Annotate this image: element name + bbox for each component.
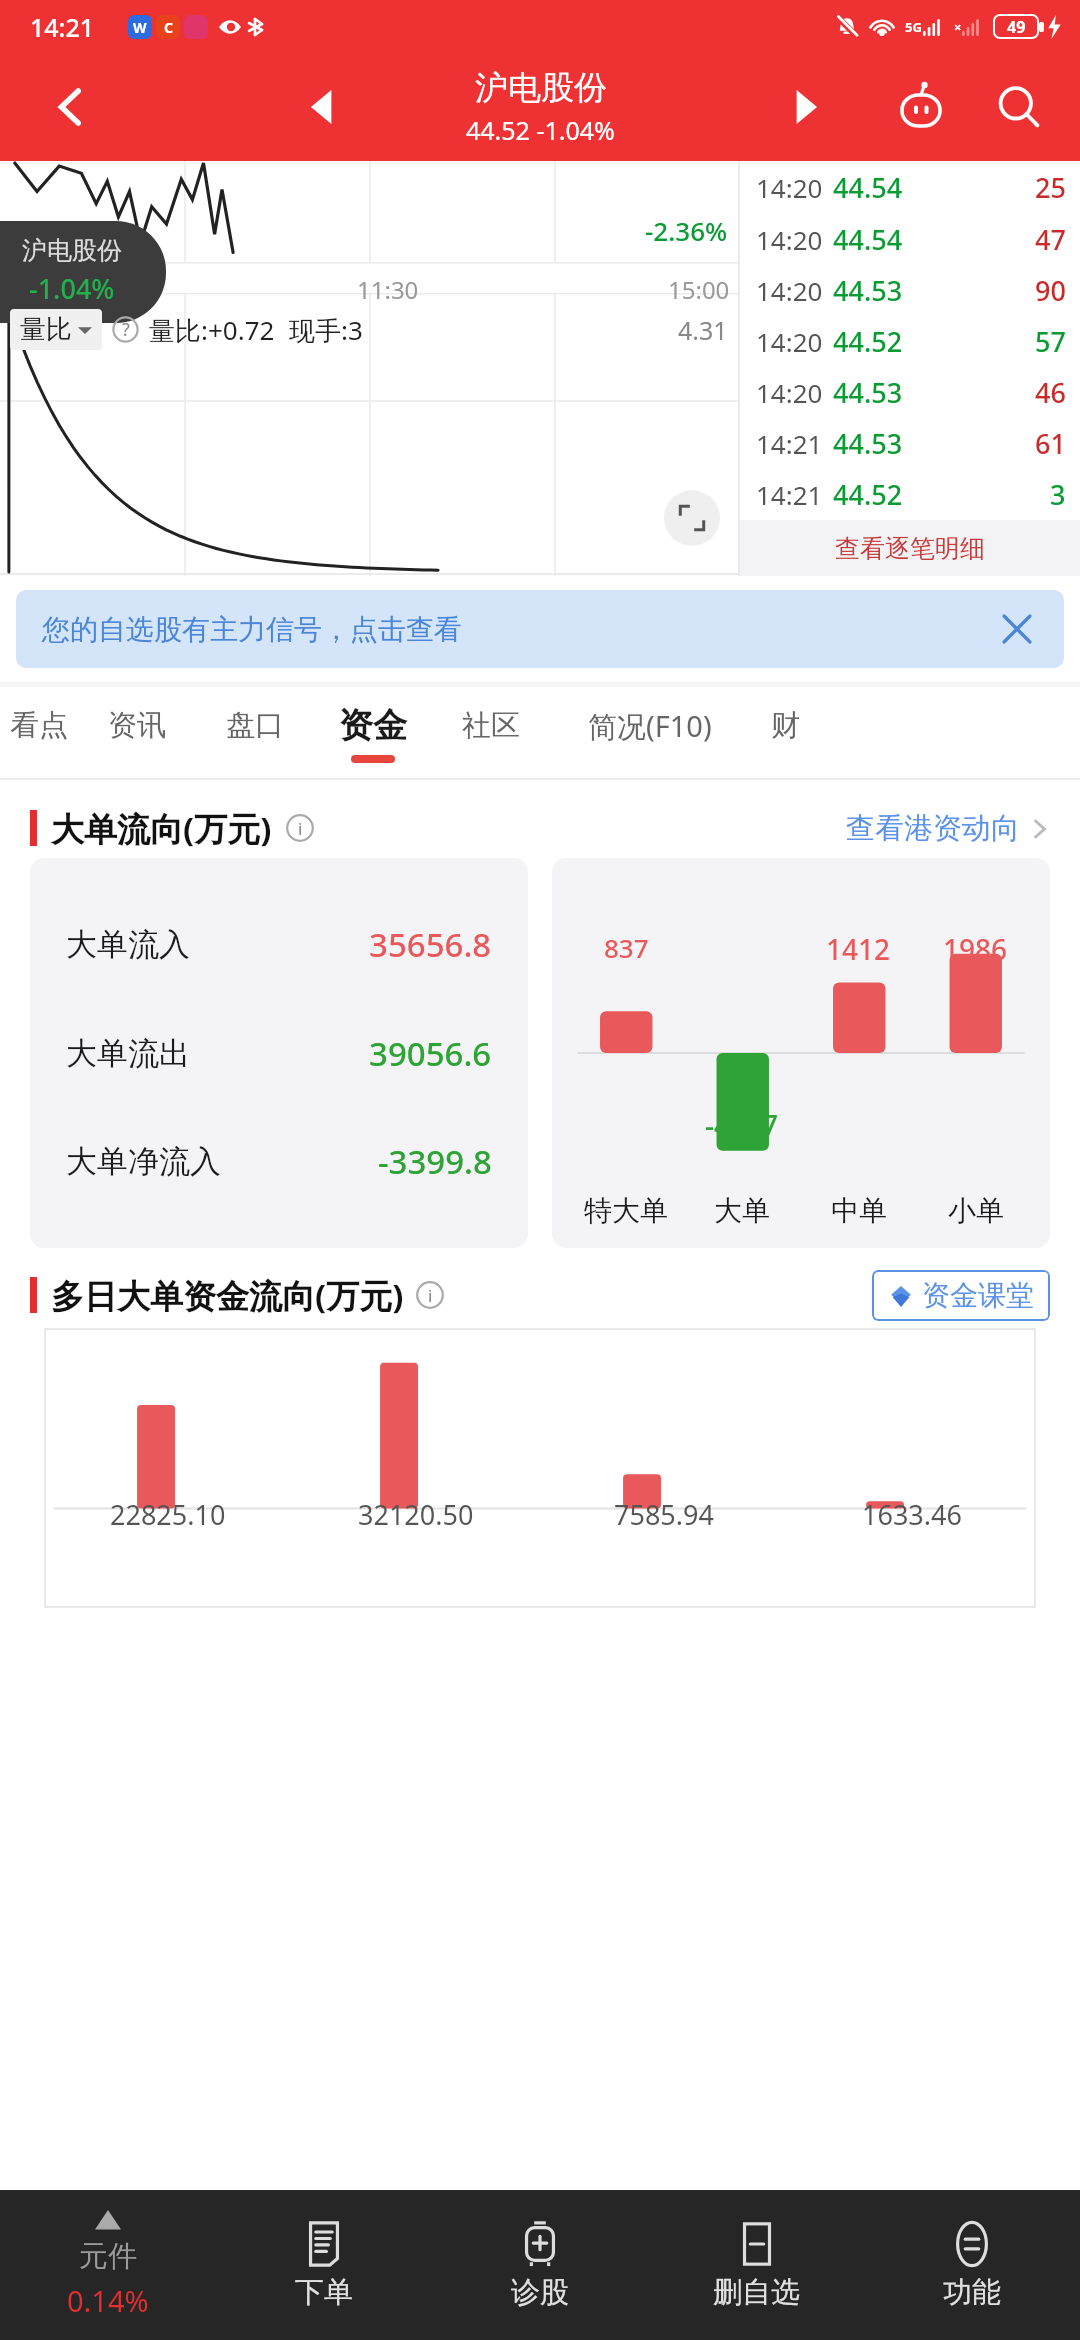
button[interactable]: 22825.10 <box>44 1328 1036 1608</box>
staticText: 49 <box>1007 16 1026 38</box>
staticText: 诊股 <box>511 2274 569 2311</box>
staticText: 39056.6 <box>369 1031 492 1076</box>
staticText: 大单 <box>714 1193 770 1228</box>
staticText: 0.14% <box>67 2281 149 2320</box>
staticText: 1986 <box>943 930 1008 968</box>
staticText: 功能 <box>943 2274 1001 2311</box>
staticText: -3399.8 <box>378 1139 492 1184</box>
staticText: 看点 <box>10 707 68 744</box>
staticText: -1.04% <box>29 270 115 307</box>
staticText: i <box>428 1284 433 1307</box>
button[interactable]: 14:21 <box>740 418 1080 469</box>
staticText: C <box>164 18 173 37</box>
staticText: 查看港资动向 <box>846 810 1020 847</box>
button[interactable]: 财 <box>750 687 820 780</box>
button[interactable]: 下单 <box>216 2190 432 2340</box>
staticText: 32120.50 <box>358 1496 474 1533</box>
button[interactable]: Info <box>416 1281 444 1309</box>
staticText: 14:20 <box>756 222 823 257</box>
button[interactable]: 社区 <box>432 687 550 780</box>
staticText: 查看逐笔明细 <box>835 533 985 564</box>
button[interactable]: 简况(F10) <box>550 687 750 780</box>
staticText: 5G <box>905 18 922 36</box>
staticText: 44.53 <box>833 272 903 309</box>
staticText: 删自选 <box>713 2274 800 2311</box>
button[interactable]: 14:20 <box>740 316 1080 367</box>
staticText: 特大单 <box>584 1193 668 1228</box>
staticText: 14:20 <box>756 375 823 410</box>
button[interactable]: 盘口 <box>196 687 314 780</box>
button[interactable]: 资金课堂 <box>872 1270 1050 1321</box>
staticText: 25 <box>1035 169 1066 206</box>
button[interactable]: AI assistant <box>892 78 950 136</box>
button[interactable]: Previous stock <box>300 85 344 129</box>
button[interactable]: Next stock <box>784 85 828 129</box>
staticText: 多日大单资金流向(万元) <box>51 1273 404 1318</box>
staticText: 大单流出 <box>66 1034 190 1073</box>
button[interactable]: 837 <box>552 858 1050 1248</box>
staticText: 44.52 <box>833 323 903 360</box>
staticText: 22825.10 <box>110 1496 226 1533</box>
staticText: 46 <box>1035 374 1066 411</box>
staticText: 11:30 <box>357 273 419 306</box>
staticText: 社区 <box>462 707 520 744</box>
staticText: 15:00 <box>668 273 730 306</box>
staticText: 下单 <box>295 2274 353 2311</box>
button[interactable]: 资金 <box>314 687 432 780</box>
staticText: 简况(F10) <box>588 706 712 746</box>
staticText: 沪电股份 <box>475 67 607 109</box>
button[interactable]: 看点 <box>0 687 78 780</box>
button[interactable]: 元件 <box>0 2190 216 2340</box>
staticText: 44.53 <box>833 374 903 411</box>
staticText: 57 <box>1035 323 1066 360</box>
staticText: 7585.94 <box>614 1496 714 1533</box>
staticText: 14:20 <box>756 273 823 308</box>
button[interactable]: 14:20 <box>740 213 1080 265</box>
staticText: 量比:+0.72 <box>149 312 275 348</box>
staticText: 财 <box>771 707 800 744</box>
button[interactable]: Close <box>996 608 1038 650</box>
staticText: 44.54 <box>833 221 903 258</box>
staticText: i <box>298 817 303 840</box>
button[interactable]: 14:20 <box>740 161 1080 213</box>
button[interactable]: 诊股 <box>432 2190 648 2340</box>
button[interactable]: 功能 <box>864 2190 1080 2340</box>
staticText: 盘口 <box>226 707 284 744</box>
staticText: 44.53 <box>833 425 903 462</box>
staticText: 量比 <box>20 313 72 346</box>
staticText: 现手:3 <box>289 312 363 348</box>
staticText: 小单 <box>948 1193 1004 1228</box>
button[interactable]: 大单流入 <box>30 858 528 1248</box>
staticText: 1412 <box>826 930 891 968</box>
button[interactable]: 查看逐笔明细 <box>740 520 1080 576</box>
button[interactable]: 您的自选股有主力信号，点击查看 <box>16 590 1064 668</box>
staticText: 元件 <box>79 2238 137 2275</box>
button[interactable]: Help <box>112 316 139 343</box>
button[interactable]: Back <box>48 84 94 130</box>
staticText: 47 <box>1035 221 1066 258</box>
staticText: 35656.8 <box>369 922 492 967</box>
staticText: 资金 <box>339 704 407 747</box>
button[interactable]: Search <box>990 78 1048 136</box>
staticText: 4.31 <box>678 313 728 347</box>
button[interactable]: 量比 <box>10 309 102 350</box>
button[interactable]: Fullscreen <box>664 490 720 546</box>
button[interactable]: 删自选 <box>648 2190 864 2340</box>
staticText: 大单净流入 <box>66 1142 221 1181</box>
staticText: 大单流入 <box>66 925 190 964</box>
button[interactable]: Info <box>286 814 314 842</box>
button[interactable]: 14:20 <box>740 367 1080 418</box>
staticText: 大单流向(万元) <box>51 806 272 851</box>
staticText: 90 <box>1035 272 1066 309</box>
button[interactable]: 资讯 <box>78 687 196 780</box>
button[interactable]: 14:20 <box>740 265 1080 316</box>
staticText: 44.54 <box>833 169 903 206</box>
button[interactable]: 查看港资动向 <box>846 810 1050 847</box>
staticText: -4237 <box>705 1106 779 1144</box>
staticText: 1633.46 <box>862 1496 962 1533</box>
button[interactable]: 14:21 <box>740 469 1080 520</box>
staticText: 44.52 -1.04% <box>466 113 615 147</box>
staticText: 837 <box>604 930 649 965</box>
staticText: 沪电股份 <box>22 235 122 266</box>
staticText: 资讯 <box>108 707 166 744</box>
